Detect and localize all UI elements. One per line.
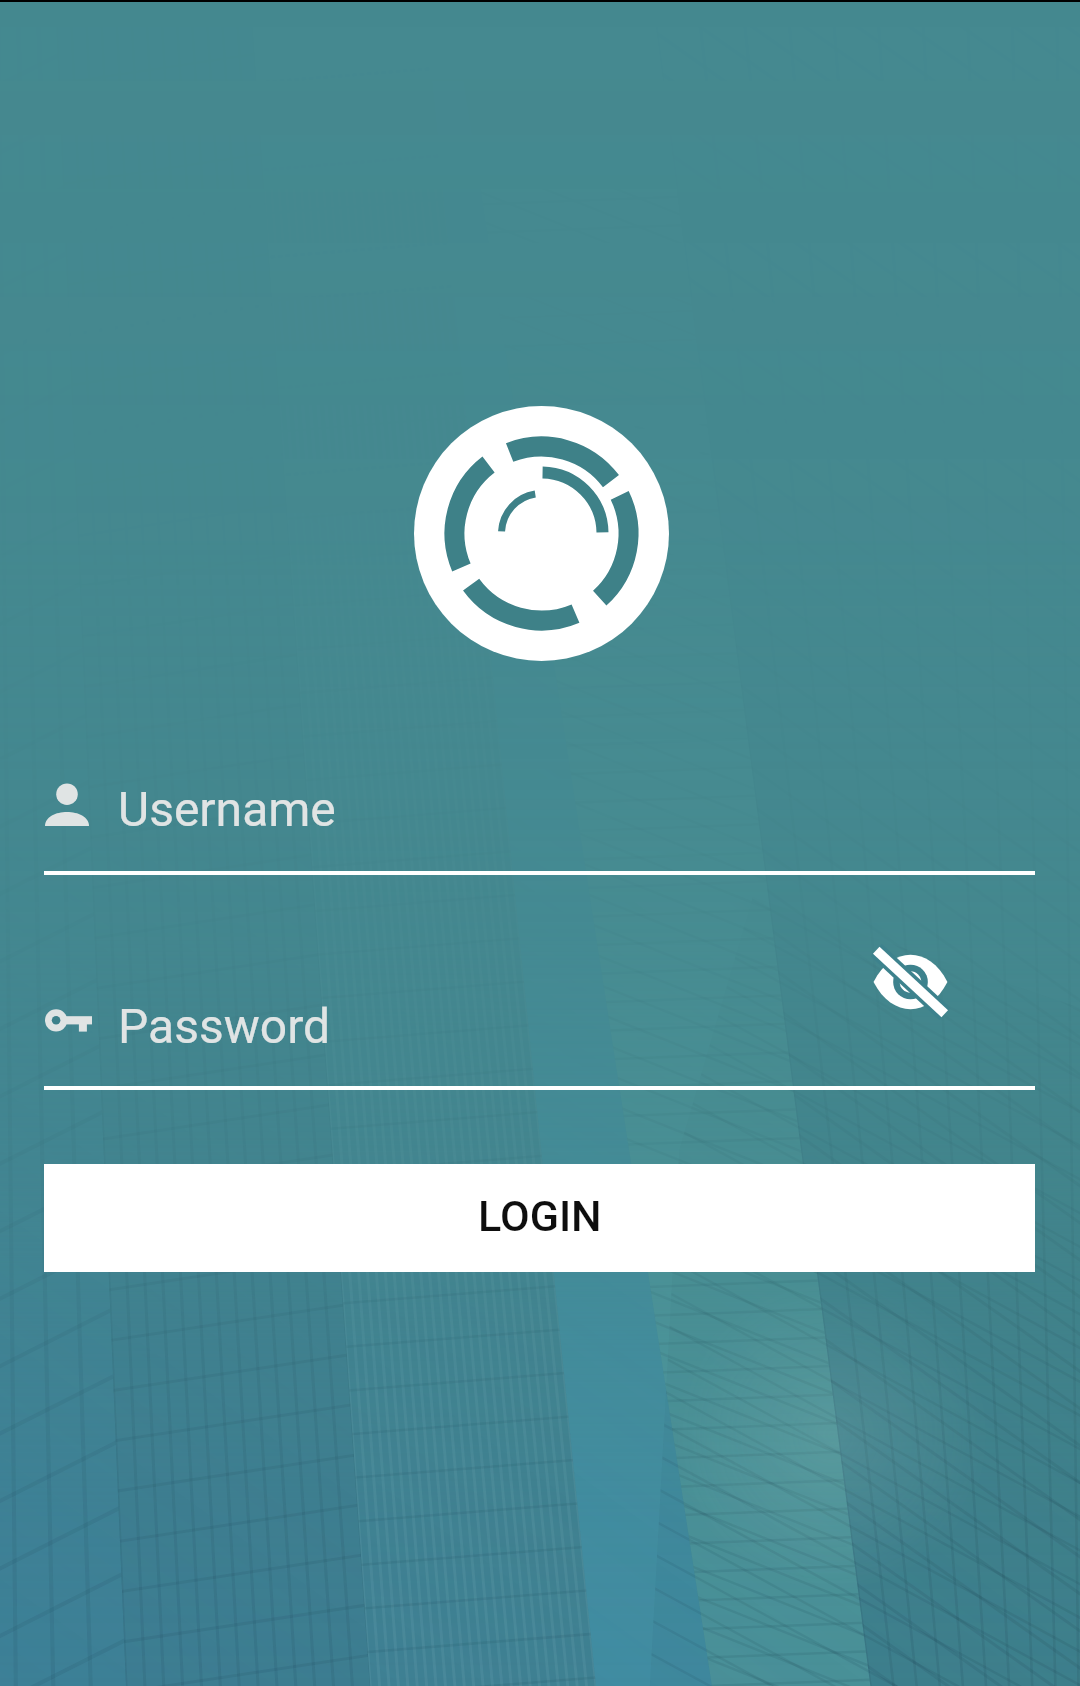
button[interactable]: Show password [838, 910, 982, 1054]
staticText: LOGIN [478, 1191, 602, 1241]
staticText: Password [118, 998, 331, 1054]
button[interactable]: Password [44, 977, 1035, 1091]
staticText: Username [118, 781, 336, 837]
button[interactable]: Username [44, 762, 1035, 876]
button[interactable]: LOGIN [44, 1164, 1035, 1272]
